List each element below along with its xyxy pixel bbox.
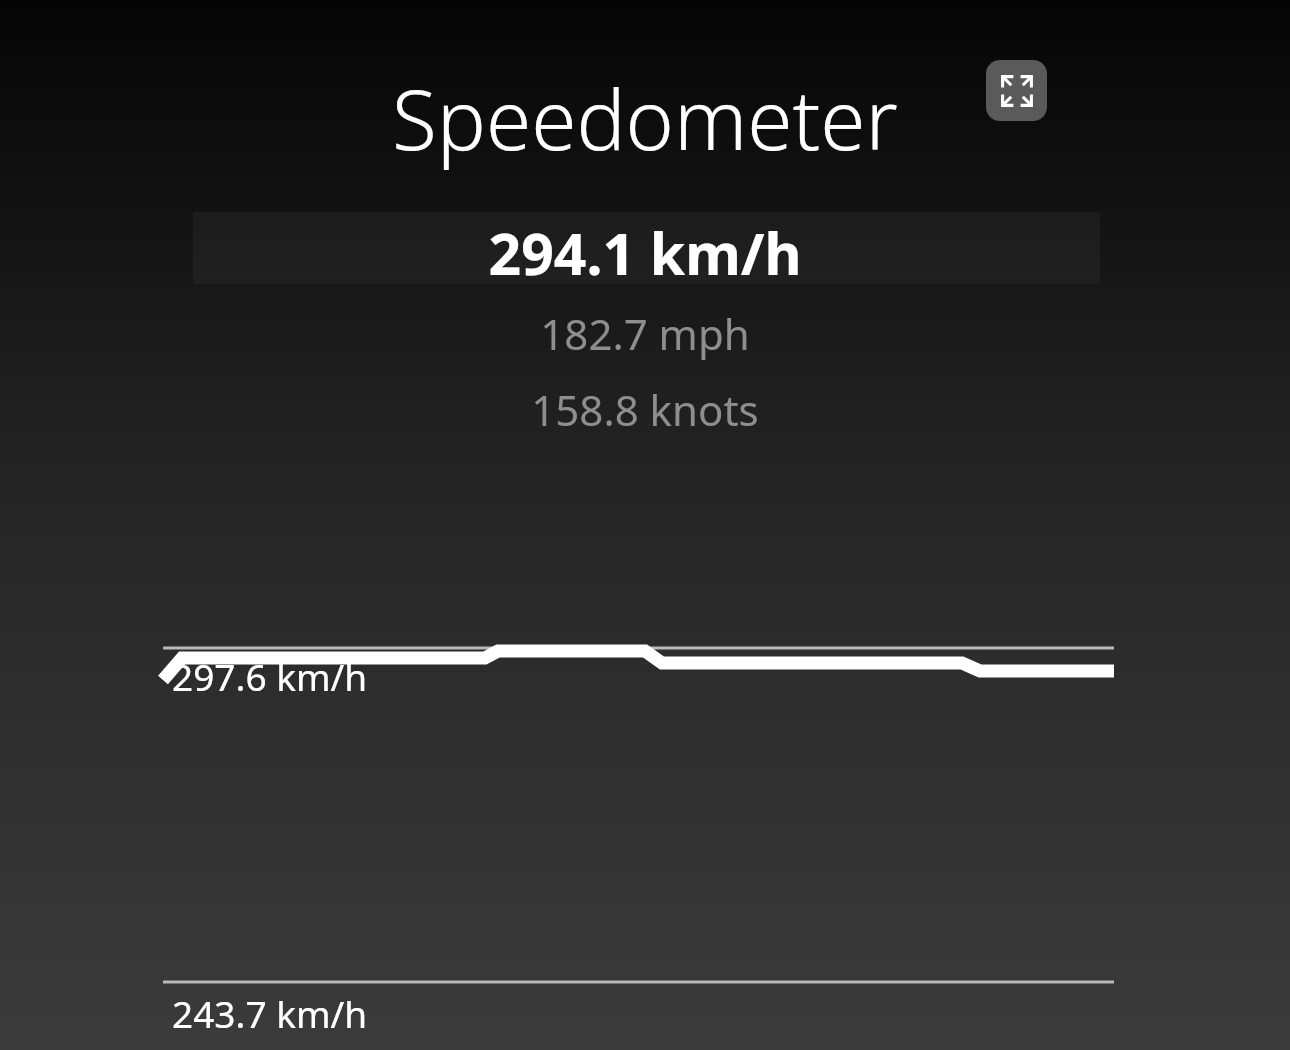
staticText: 243.7 km/h <box>172 988 368 1038</box>
button[interactable]: Expand to fullscreen <box>986 60 1047 121</box>
staticText: 182.7 mph <box>0 305 1290 362</box>
staticText: 294.1 km/h <box>0 214 1290 292</box>
staticText: 297.6 km/h <box>172 651 368 701</box>
staticText: 158.8 knots <box>0 381 1290 438</box>
staticText: Speedometer <box>0 62 1290 174</box>
